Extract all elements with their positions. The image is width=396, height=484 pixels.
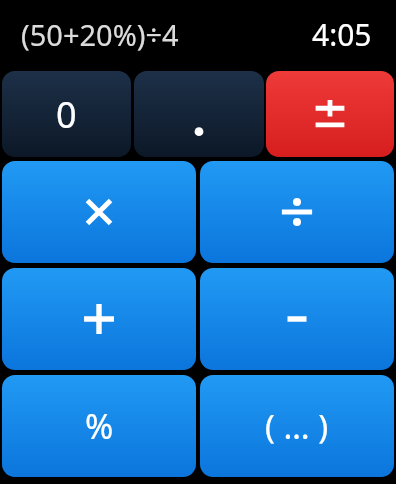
staticText: 4:05: [312, 14, 372, 55]
button[interactable]: Multiply: [2, 161, 196, 263]
button[interactable]: Decimal point: [134, 71, 264, 157]
button[interactable]: Parentheses: [200, 375, 394, 477]
button[interactable]: Plus minus sign: [266, 71, 394, 157]
staticText: (50+20%)÷4: [21, 15, 179, 54]
button[interactable]: Add: [2, 268, 196, 370]
button[interactable]: Zero: [2, 71, 131, 157]
staticText: ( … ): [265, 404, 329, 449]
button[interactable]: Percent: [2, 375, 196, 477]
staticText: 0: [56, 90, 77, 139]
button[interactable]: Subtract: [200, 268, 394, 370]
button[interactable]: Divide: [200, 161, 394, 263]
staticText: %: [85, 403, 114, 449]
